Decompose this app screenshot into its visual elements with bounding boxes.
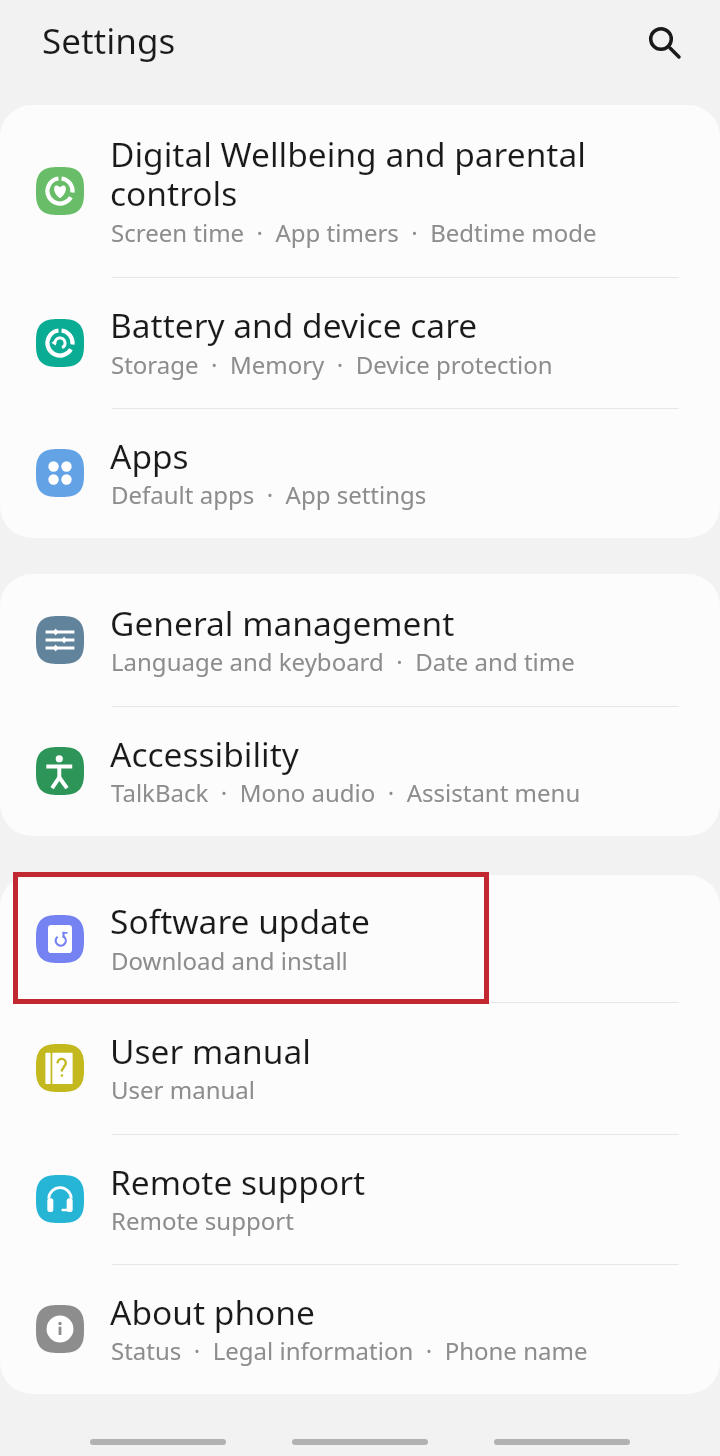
button[interactable]: Back <box>494 1439 630 1445</box>
staticText: TalkBack · Mono audio · Assistant menu <box>111 776 581 809</box>
staticText: Screen time · App timers · Bedtime mode <box>111 216 597 249</box>
staticText: Default apps · App settings <box>111 478 427 511</box>
button[interactable]: Apps <box>0 408 720 538</box>
button[interactable]: Recents <box>90 1439 226 1445</box>
button[interactable]: Battery and device care <box>0 277 720 408</box>
staticText: Download and install <box>111 944 348 977</box>
button[interactable]: Home <box>292 1439 428 1445</box>
button[interactable]: Digital Wellbeing and parental controls <box>0 105 720 277</box>
button[interactable]: Accessibility <box>0 706 720 836</box>
button[interactable]: Search <box>630 8 690 68</box>
staticText: Language and keyboard · Date and time <box>111 645 575 678</box>
staticText: Battery and device care <box>110 302 478 348</box>
staticText: About phone <box>110 1289 315 1335</box>
staticText: Software update <box>110 898 370 944</box>
button[interactable]: Software update <box>0 875 720 1002</box>
staticText: Remote support <box>110 1159 366 1205</box>
button[interactable]: User manual <box>0 1002 720 1134</box>
staticText: Accessibility <box>110 731 299 777</box>
button[interactable]: Remote support <box>0 1134 720 1264</box>
staticText: Storage · Memory · Device protection <box>111 348 553 381</box>
staticText: Settings <box>42 17 176 65</box>
staticText: User manual <box>110 1028 311 1074</box>
button[interactable]: About phone <box>0 1264 720 1394</box>
staticText: General management <box>110 600 455 646</box>
staticText: Status · Legal information · Phone name <box>111 1334 588 1367</box>
staticText: User manual <box>111 1073 255 1106</box>
staticText: Apps <box>110 433 189 479</box>
staticText: Digital Wellbeing and parental controls <box>110 131 586 215</box>
button[interactable]: General management <box>0 574 720 706</box>
staticText: Remote support <box>111 1204 294 1237</box>
